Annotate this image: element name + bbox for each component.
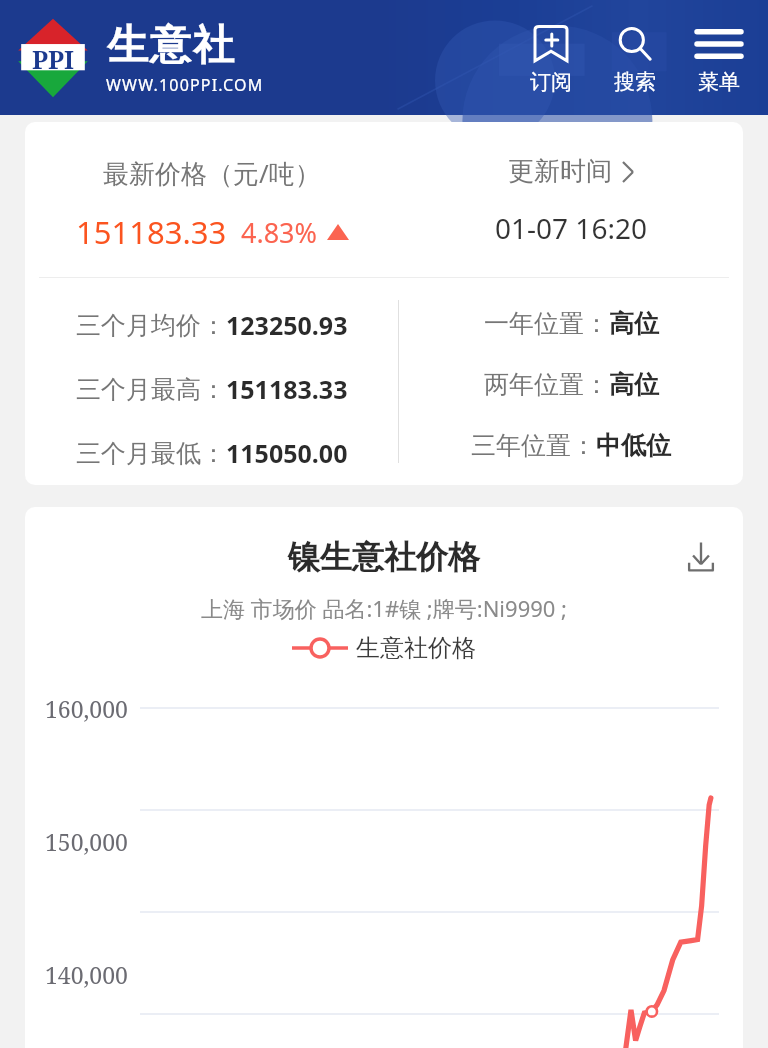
- staticText: 搜索: [614, 69, 656, 95]
- staticText: 三个月最低：: [76, 438, 226, 469]
- staticText: 高位: [609, 308, 659, 339]
- staticText: 一年位置：: [484, 308, 609, 339]
- staticText: 中低位: [596, 430, 671, 461]
- staticText: PPI: [32, 42, 74, 76]
- button[interactable]: 搜索: [608, 19, 662, 97]
- staticText: 140,000: [45, 959, 128, 990]
- staticText: 最新价格（元/吨）: [103, 155, 321, 191]
- staticText: 4.83%: [241, 214, 318, 251]
- button[interactable]: Download: [679, 535, 723, 579]
- staticText: 订阅: [530, 69, 572, 95]
- staticText: 两年位置：: [484, 369, 609, 400]
- staticText: 高位: [609, 369, 659, 400]
- staticText: 01-07 16:20: [495, 209, 647, 247]
- staticText: 150,000: [45, 826, 128, 857]
- staticText: 更新时间: [508, 155, 612, 188]
- staticText: 123250.93: [226, 308, 348, 342]
- button[interactable]: 最新价格（元/吨）: [25, 122, 743, 485]
- staticText: 菜单: [698, 69, 740, 95]
- staticText: 160,000: [45, 693, 128, 724]
- staticText: 生意社: [106, 20, 235, 72]
- staticText: 三个月最高：: [76, 374, 226, 405]
- staticText: 115050.00: [226, 436, 348, 470]
- staticText: 三年位置：: [471, 430, 596, 461]
- staticText: 151183.33: [76, 211, 227, 253]
- staticText: 151183.33: [226, 372, 348, 406]
- staticText: 镍生意社价格: [288, 537, 480, 577]
- button[interactable]: 菜单: [692, 19, 746, 97]
- staticText: 上海 市场价 品名:1#镍 ;牌号:Ni9990 ;: [25, 593, 743, 623]
- staticText: 三个月均价：: [76, 310, 226, 341]
- staticText: 生意社价格: [356, 633, 476, 663]
- button[interactable]: 订阅: [524, 19, 578, 97]
- staticText: WWW.100PPI.COM: [106, 74, 264, 96]
